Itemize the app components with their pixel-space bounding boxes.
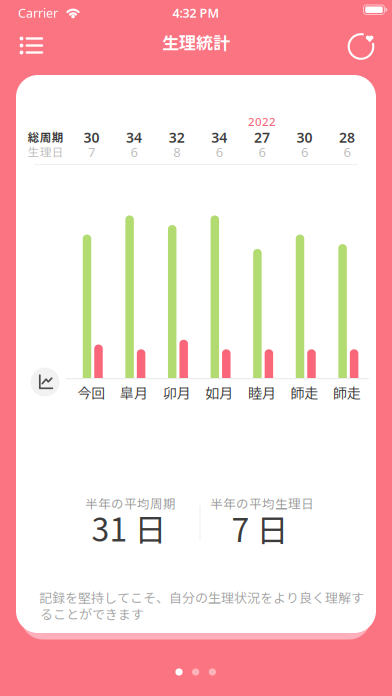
staticText: 睦月 (248, 382, 276, 402)
staticText: 総周期 (28, 128, 64, 145)
staticText: 6 (258, 143, 265, 161)
staticText: 皐月 (120, 382, 148, 402)
staticText: 生理日 (28, 143, 64, 160)
staticText: 師走 (333, 382, 361, 402)
staticText: 6 (301, 143, 308, 161)
staticText: 31 日 (91, 504, 166, 551)
staticText: 28 (339, 128, 355, 147)
staticText: 30 (83, 128, 99, 147)
staticText: 4:32 PM (172, 4, 219, 21)
staticText: 今回 (77, 382, 105, 402)
staticText: 30 (296, 128, 312, 147)
staticText: 生理統計 (162, 29, 230, 54)
staticText: 7 (88, 143, 95, 161)
staticText: 記録を堅持してこそ、自分の生理状況をより良く理解す (39, 588, 364, 606)
staticText: 6 (216, 143, 223, 161)
staticText: 2022 (248, 114, 276, 129)
staticText: Carrier (18, 4, 58, 21)
staticText: 卯月 (163, 382, 191, 402)
staticText: 師走 (290, 382, 318, 402)
staticText: 27 (254, 128, 270, 147)
staticText: 半年の平均生理日 (210, 494, 314, 512)
staticText: 32 (169, 128, 185, 147)
staticText: 如月 (205, 382, 233, 402)
staticText: 半年の平均周期 (85, 494, 176, 512)
staticText: 7 日 (231, 505, 288, 551)
staticText: 8 (173, 143, 180, 161)
staticText: 6 (344, 143, 351, 161)
staticText: 34 (211, 128, 227, 147)
staticText: 34 (126, 128, 142, 147)
staticText: ることができます (40, 604, 144, 623)
staticText: 6 (131, 143, 138, 161)
